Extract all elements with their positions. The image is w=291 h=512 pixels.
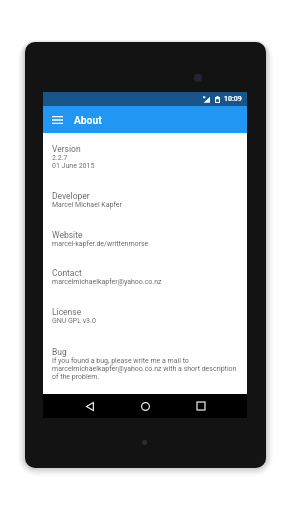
button[interactable]: Home: [125, 394, 165, 418]
staticText: Contact: [52, 268, 82, 278]
staticText: Developer: [52, 191, 90, 201]
staticText: Version: [52, 144, 81, 154]
staticText: 2.2.7: [52, 154, 68, 162]
button[interactable]: Website: [52, 230, 244, 248]
staticText: About: [74, 114, 102, 126]
staticText: Bug: [52, 347, 67, 357]
staticText: Marcel Michael Kapfer: [52, 201, 122, 209]
staticText: 10:09: [224, 95, 242, 103]
staticText: marcel-kapfer.de/writtenmorse: [52, 240, 149, 248]
staticText: Website: [52, 230, 83, 240]
button[interactable]: Developer: [52, 191, 244, 209]
button[interactable]: License: [52, 307, 244, 325]
button[interactable]: Bug: [52, 347, 244, 381]
staticText: 01 June 2015: [52, 162, 95, 170]
button[interactable]: Version: [52, 144, 244, 170]
button[interactable]: Open navigation drawer: [47, 110, 67, 130]
staticText: GNU GPL v3.0: [52, 317, 96, 325]
staticText: License: [52, 307, 82, 317]
staticText: marcelmichaelkapfer@yahoo.co.nz: [52, 278, 162, 286]
button[interactable]: Contact: [52, 268, 244, 286]
staticText: If you found a bug, please write me a ma…: [52, 357, 244, 381]
button[interactable]: Recent apps: [181, 394, 221, 418]
button[interactable]: Back: [69, 394, 109, 418]
